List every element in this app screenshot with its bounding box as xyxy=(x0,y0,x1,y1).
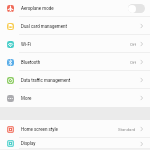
staticText: Display xyxy=(21,141,36,146)
button[interactable]: Dual card management xyxy=(0,17,150,35)
staticText: Aeroplane mode xyxy=(21,6,54,11)
staticText: Home screen style xyxy=(21,127,58,132)
button[interactable]: Aeroplane mode switch, off xyxy=(128,4,145,13)
button[interactable]: Bluetooth xyxy=(0,53,150,71)
staticText: Bluetooth xyxy=(21,60,41,65)
staticText: More xyxy=(21,96,32,101)
staticText: Dual card management xyxy=(21,24,68,29)
staticText: Wi-Fi xyxy=(21,42,32,47)
staticText: Data traffic management xyxy=(21,78,71,83)
button[interactable]: Data traffic management xyxy=(0,71,150,89)
button[interactable]: Aeroplane mode xyxy=(0,0,150,17)
button[interactable]: Display xyxy=(0,138,150,149)
staticText: Standard xyxy=(118,127,136,132)
button[interactable]: Home screen style xyxy=(0,120,150,138)
button[interactable]: More xyxy=(0,89,150,107)
staticText: Off xyxy=(130,42,136,47)
staticText: Off xyxy=(130,60,136,65)
button[interactable]: Wi-Fi xyxy=(0,35,150,53)
